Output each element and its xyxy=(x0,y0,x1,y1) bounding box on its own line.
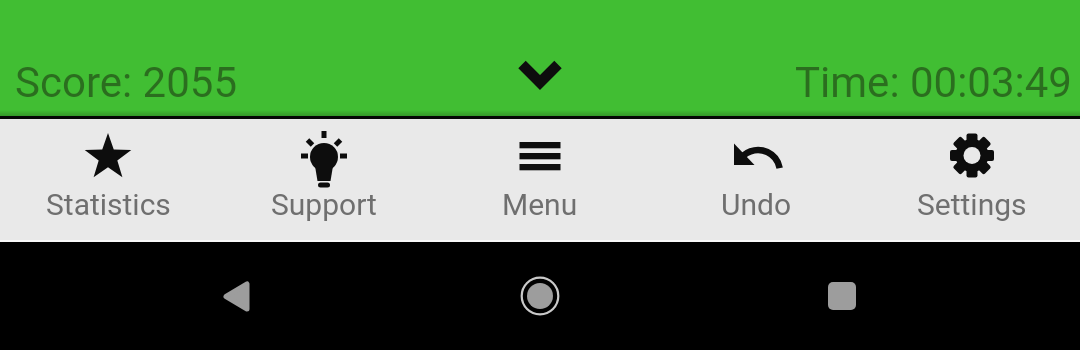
staticText: Time: 00:03:49 xyxy=(795,58,1072,107)
button[interactable]: Support xyxy=(216,119,432,242)
staticText: Statistics xyxy=(46,187,171,222)
staticText: Menu xyxy=(502,187,578,222)
button[interactable]: Statistics xyxy=(0,119,216,242)
staticText: Settings xyxy=(917,187,1027,222)
button[interactable]: Menu xyxy=(432,119,648,242)
button[interactable] xyxy=(480,242,600,350)
button[interactable]: Undo xyxy=(648,119,864,242)
button[interactable] xyxy=(782,242,902,350)
button[interactable] xyxy=(510,50,570,100)
button[interactable]: Settings xyxy=(864,119,1080,242)
staticText: Support xyxy=(271,187,377,222)
button[interactable] xyxy=(176,242,296,350)
staticText: Score: 2055 xyxy=(15,58,237,107)
staticText: Undo xyxy=(721,187,792,222)
